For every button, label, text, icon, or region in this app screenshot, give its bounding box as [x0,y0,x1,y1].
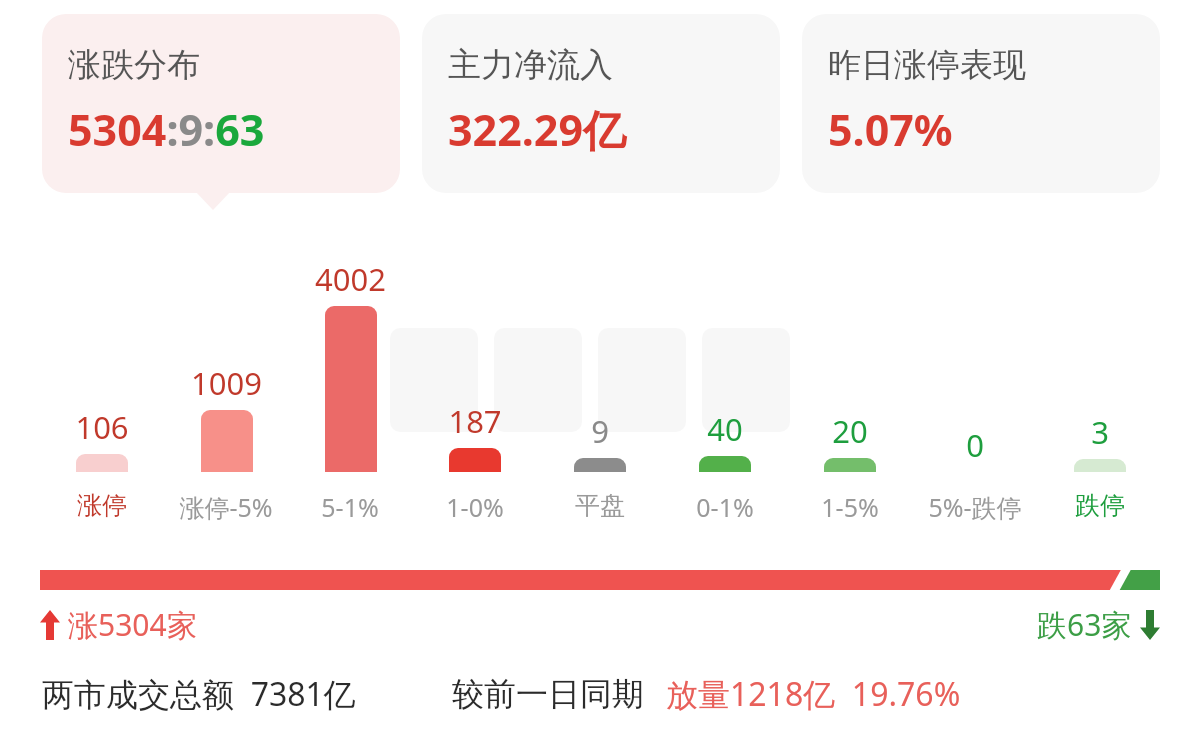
button[interactable]: 0 [912,222,1037,532]
staticText: 5304:9:63 [68,100,265,159]
staticText: 涨停-5% [179,490,273,524]
staticText: 较前一日同期 [452,674,644,714]
button[interactable]: 9 [537,222,662,532]
staticText: 5%-跌停 [928,490,1022,524]
button[interactable]: 涨5304家 [40,604,197,645]
staticText: 187 [448,400,502,442]
staticText: 平盘 [575,490,625,521]
staticText: 昨日涨停表现 [828,44,1026,86]
staticText: 3 [1091,411,1109,453]
staticText: 9 [591,410,609,452]
staticText: 1009 [191,362,262,404]
staticText: 5.07% [828,100,953,159]
button[interactable]: 1009 [164,222,288,532]
staticText: 106 [75,406,129,448]
staticText: 跌停 [1075,490,1125,521]
button[interactable]: 昨日涨停表现 [802,14,1160,193]
staticText: 涨5304家 [68,604,197,645]
staticText: 涨跌分布 [68,44,200,86]
staticText: 主力净流入 [448,44,613,86]
button[interactable]: 20 [787,222,912,532]
staticText: 40 [707,408,743,450]
staticText: 5-1% [321,490,379,524]
button[interactable]: 3 [1037,222,1162,532]
button[interactable]: 106 [40,222,164,532]
staticText: 涨停 [77,490,127,521]
staticText: 跌63家 [1037,604,1132,645]
staticText: 4002 [315,258,386,300]
button[interactable]: 涨跌分布 [42,14,400,193]
button[interactable]: 涨跌比例 [40,570,1160,590]
staticText: 1-5% [821,490,879,524]
button[interactable]: 跌63家 [1037,604,1160,645]
staticText: 0-1% [696,490,754,524]
button[interactable]: 187 [412,222,537,532]
button[interactable]: 主力净流入 [422,14,780,193]
staticText: 322.29亿 [448,100,627,159]
staticText: 20 [832,410,868,452]
staticText: 1-0% [446,490,504,524]
button[interactable]: 40 [662,222,787,532]
staticText: 0 [966,424,984,466]
button[interactable]: 4002 [288,222,412,532]
staticText: 放量1218亿 19.76% [666,672,961,716]
staticText: 两市成交总额 7381亿 [42,672,356,716]
